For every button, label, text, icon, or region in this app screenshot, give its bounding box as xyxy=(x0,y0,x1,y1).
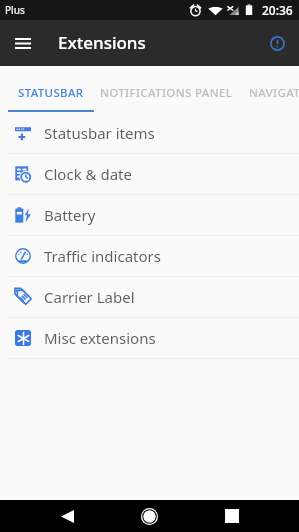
button[interactable]: NOTIFICATIONS PANEL xyxy=(94,66,239,113)
staticText: Traffic indicators xyxy=(44,246,161,266)
button[interactable]: Back xyxy=(51,500,83,532)
staticText: 20:36 xyxy=(262,2,293,18)
button[interactable]: Clock & date xyxy=(0,154,299,195)
staticText: Clock & date xyxy=(44,164,132,184)
button[interactable]: Statusbar items xyxy=(0,113,299,154)
button[interactable]: STATUSBAR xyxy=(8,66,94,113)
button[interactable]: Traffic indicators xyxy=(0,236,299,277)
staticText: Misc extensions xyxy=(44,328,156,348)
staticText: NOTIFICATIONS PANEL xyxy=(100,85,233,101)
button[interactable]: Misc extensions xyxy=(0,318,299,359)
button[interactable]: Recent apps xyxy=(216,500,248,532)
button[interactable]: Info xyxy=(262,28,292,58)
button[interactable]: Battery xyxy=(0,195,299,236)
button[interactable]: Open navigation menu xyxy=(5,25,41,61)
staticText: Battery xyxy=(44,205,96,225)
button[interactable]: NAVIGATION BAR xyxy=(239,66,299,113)
staticText: Extensions xyxy=(58,31,146,54)
staticText: Carrier Label xyxy=(44,287,135,307)
button[interactable]: Carrier Label xyxy=(0,277,299,318)
staticText: Statusbar items xyxy=(44,123,155,143)
staticText: NAVIGATION BAR xyxy=(249,85,299,101)
staticText: Plus xyxy=(5,3,25,17)
staticText: STATUSBAR xyxy=(18,85,84,101)
button[interactable]: Home xyxy=(133,500,165,532)
